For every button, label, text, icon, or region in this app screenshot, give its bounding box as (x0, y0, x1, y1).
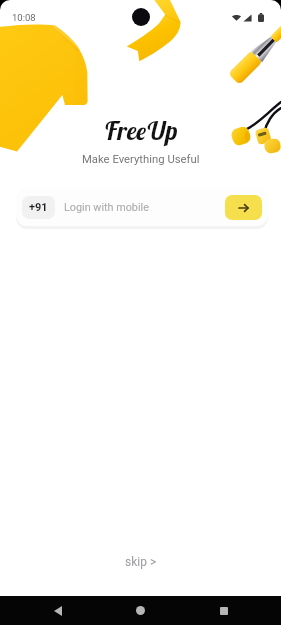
button[interactable]: +91 (22, 196, 55, 219)
button[interactable]: Back (43, 596, 72, 625)
button[interactable]: skip > (107, 548, 175, 576)
staticText: 10:08 (12, 12, 36, 23)
button[interactable]: Continue (225, 195, 262, 220)
staticText: FreeUp (104, 115, 178, 146)
button[interactable]: Home (126, 596, 155, 625)
button[interactable]: Recents (209, 596, 238, 625)
staticText: Login with mobile (64, 201, 149, 214)
staticText: skip > (125, 555, 157, 569)
staticText: +91 (29, 201, 48, 214)
staticText: Make Everything Useful (82, 153, 200, 166)
